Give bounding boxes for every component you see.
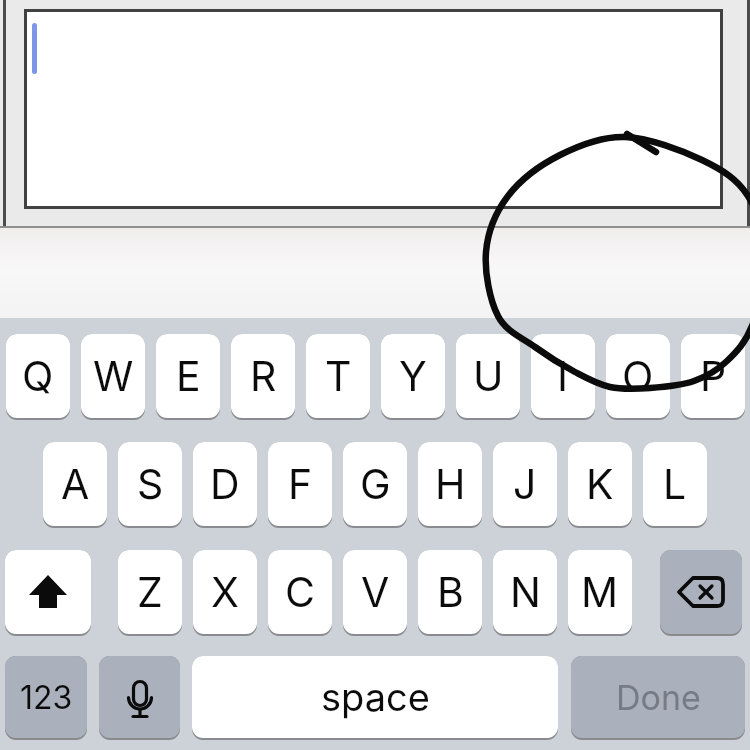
button[interactable] [5, 550, 91, 636]
button[interactable]: W [81, 334, 145, 420]
staticText: G [360, 459, 391, 509]
button[interactable]: R [231, 334, 295, 420]
button[interactable]: B [418, 550, 482, 636]
staticText: F [288, 459, 313, 509]
button[interactable]: J [493, 442, 557, 528]
button[interactable]: M [568, 550, 632, 636]
button[interactable]: E [156, 334, 220, 420]
staticText: 123 [20, 678, 73, 717]
staticText: O [622, 351, 654, 401]
button[interactable]: C [268, 550, 332, 636]
staticText: W [93, 351, 134, 401]
staticText: V [361, 567, 390, 617]
button[interactable] [660, 550, 742, 636]
button[interactable]: D [193, 442, 257, 528]
staticText: Z [137, 567, 163, 617]
staticText: M [581, 567, 619, 617]
staticText: K [586, 459, 614, 509]
staticText: H [435, 459, 466, 509]
staticText: Done [616, 677, 701, 718]
button[interactable]: A [43, 442, 107, 528]
button[interactable]: space [192, 656, 558, 740]
staticText: Y [399, 351, 427, 401]
button[interactable]: 123 [5, 656, 87, 740]
staticText: J [513, 459, 537, 509]
staticText: Q [22, 351, 54, 401]
staticText: R [250, 351, 277, 401]
button[interactable]: L [643, 442, 707, 528]
button[interactable]: P [681, 334, 745, 420]
button[interactable] [99, 656, 180, 740]
button[interactable]: Done [571, 656, 745, 740]
button[interactable]: I [531, 334, 595, 420]
staticText: I [557, 351, 569, 401]
staticText: X [211, 567, 239, 617]
staticText: D [210, 459, 240, 509]
button[interactable]: X [193, 550, 257, 636]
staticText: L [663, 459, 687, 509]
staticText: P [700, 351, 727, 401]
button[interactable]: S [118, 442, 182, 528]
staticText: A [61, 459, 90, 509]
staticText: U [473, 351, 504, 401]
button[interactable]: H [418, 442, 482, 528]
button[interactable]: K [568, 442, 632, 528]
staticText: S [137, 459, 164, 509]
staticText: C [285, 567, 315, 617]
button[interactable]: Q [6, 334, 70, 420]
staticText: E [176, 351, 201, 401]
button[interactable]: Z [118, 550, 182, 636]
button[interactable]: O [606, 334, 670, 420]
staticText: space [321, 674, 430, 720]
button[interactable]: U [456, 334, 520, 420]
button[interactable] [24, 9, 723, 209]
staticText: T [325, 351, 352, 401]
button[interactable]: N [493, 550, 557, 636]
button[interactable]: Y [381, 334, 445, 420]
staticText: B [437, 567, 464, 617]
button[interactable]: V [343, 550, 407, 636]
staticText: N [510, 567, 541, 617]
button[interactable]: G [343, 442, 407, 528]
button[interactable]: T [306, 334, 370, 420]
button[interactable]: F [268, 442, 332, 528]
